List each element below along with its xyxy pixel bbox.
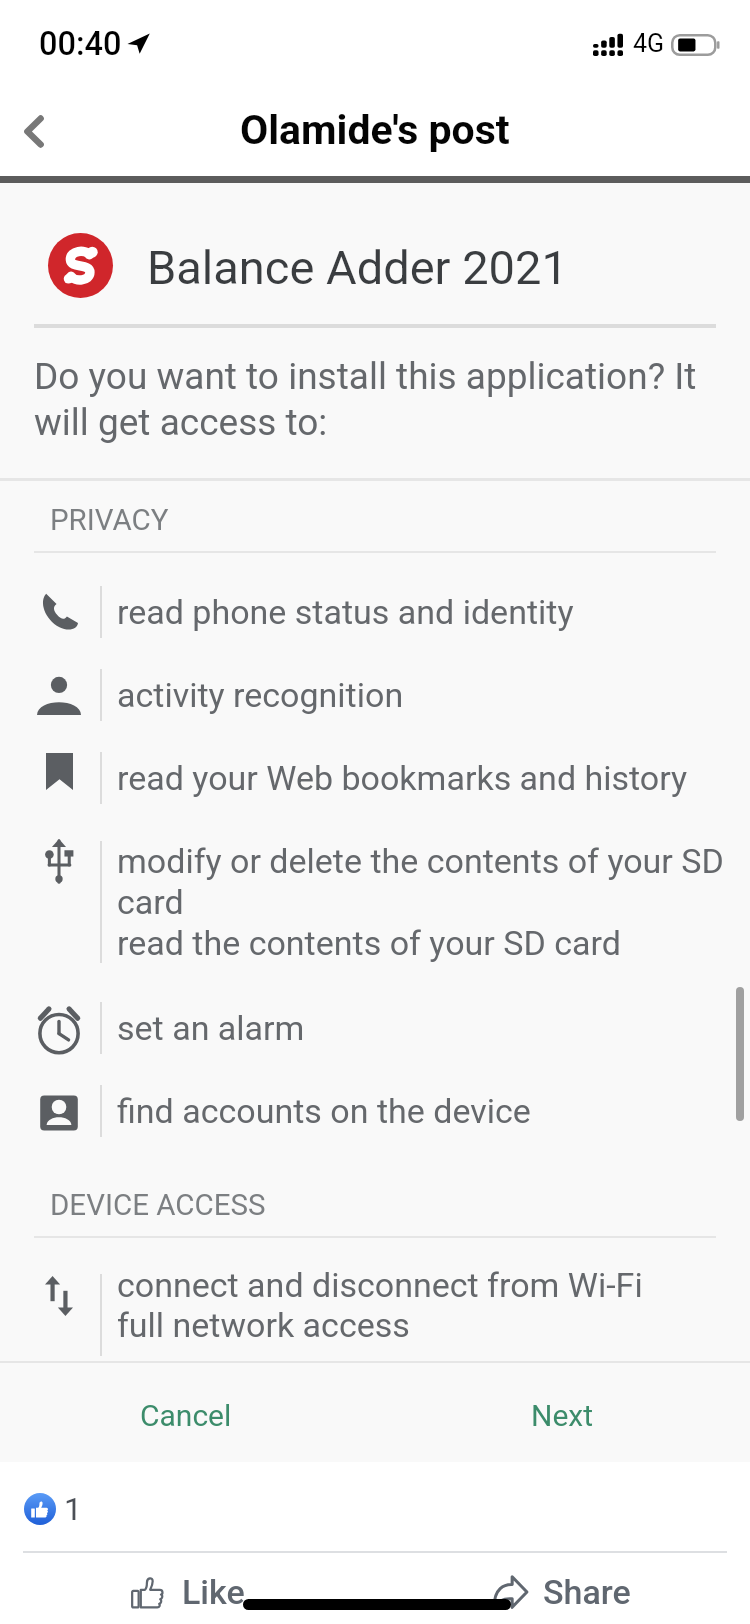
staticText: set an alarm: [117, 1008, 305, 1048]
staticText: Next: [531, 1398, 594, 1433]
button[interactable]: read your Web bookmarks and history: [0, 758, 750, 830]
button[interactable]: modify or delete the contents of your SD…: [0, 841, 750, 983]
staticText: Share: [543, 1572, 631, 1612]
button[interactable]: set an alarm: [0, 1008, 750, 1080]
staticText: 1: [64, 1490, 82, 1528]
staticText: read the contents of your SD card: [117, 923, 621, 963]
staticText: read phone status and identity: [117, 592, 574, 632]
button[interactable]: Back: [0, 88, 68, 176]
staticText: Like: [182, 1572, 245, 1612]
staticText: activity recognition: [117, 675, 404, 715]
staticText: DEVICE ACCESS: [50, 1188, 266, 1223]
staticText: modify or delete the contents of your SD…: [117, 841, 742, 923]
staticText: Cancel: [140, 1398, 232, 1433]
staticText: find accounts on the device: [117, 1091, 531, 1131]
staticText: read your Web bookmarks and history: [117, 758, 688, 798]
button[interactable]: find accounts on the device: [0, 1091, 750, 1163]
staticText: 00:40: [39, 25, 122, 63]
staticText: 4G: [633, 29, 665, 58]
button[interactable]: Next: [472, 1374, 652, 1456]
button[interactable]: read phone status and identity: [0, 592, 750, 664]
staticText: Olamide's post: [240, 106, 510, 154]
staticText: full network access: [117, 1305, 410, 1345]
button[interactable]: activity recognition: [0, 675, 750, 747]
button[interactable]: Like: [5, 1560, 370, 1624]
staticText: PRIVACY: [50, 503, 169, 538]
button[interactable]: Share: [379, 1560, 744, 1624]
button[interactable]: Like reaction: [24, 1493, 56, 1525]
staticText: Balance Adder 2021: [147, 240, 568, 295]
staticText: connect and disconnect from Wi-Fi: [117, 1265, 643, 1305]
button[interactable]: Cancel: [96, 1374, 276, 1456]
staticText: Do you want to install this application?…: [34, 355, 722, 444]
button[interactable]: connect and disconnect from Wi-Fi: [0, 1265, 750, 1367]
